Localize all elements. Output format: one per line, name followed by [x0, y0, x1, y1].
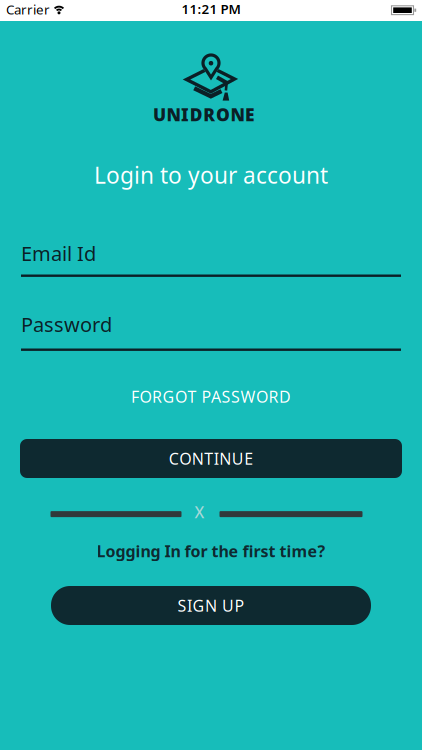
staticText: CONTINUE: [169, 448, 253, 469]
staticText: Password: [21, 311, 112, 338]
staticText: Login to your account: [94, 160, 328, 190]
button[interactable]: SIGN UP: [51, 586, 371, 625]
staticText: Email Id: [21, 240, 96, 267]
staticText: Carrier: [6, 0, 50, 18]
staticText: SIGN UP: [177, 595, 244, 616]
button[interactable]: FORGOT PASSWORD: [131, 386, 291, 407]
staticText: FORGOT PASSWORD: [131, 386, 291, 407]
staticText: UNIDRONE: [153, 103, 255, 126]
staticText: Logging In for the first time?: [96, 540, 325, 562]
staticText: X: [194, 501, 204, 523]
staticText: 11:21 PM: [181, 0, 240, 18]
button[interactable]: CONTINUE: [20, 439, 402, 478]
